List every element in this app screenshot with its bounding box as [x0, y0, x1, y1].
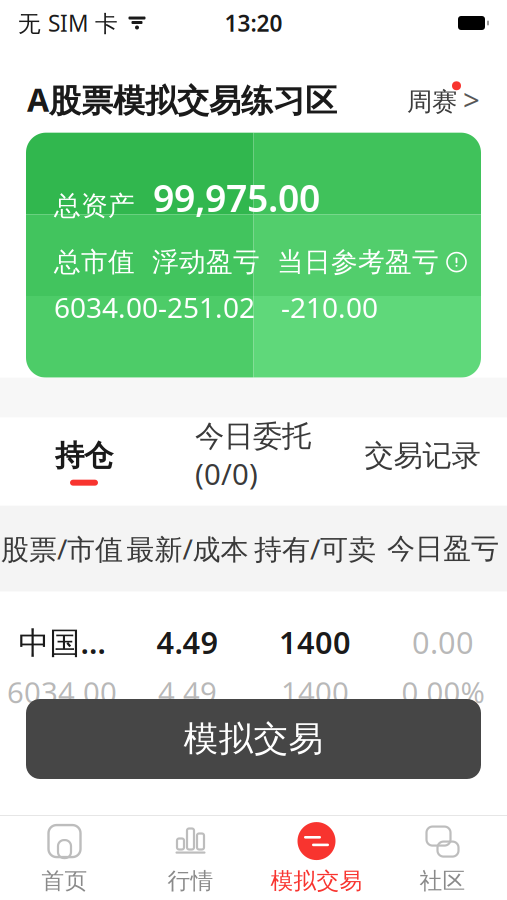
staticText: 当日参考盈亏: [277, 246, 439, 278]
button[interactable]: 行情: [127, 816, 253, 900]
staticText: 模拟交易: [183, 718, 323, 760]
staticText: 周赛: [407, 86, 457, 117]
staticText: 总资产: [54, 189, 135, 222]
button[interactable]: 交易记录: [338, 418, 507, 506]
staticText: 模拟交易: [270, 867, 362, 895]
staticText: 社区: [419, 867, 465, 895]
staticText: -210.00: [281, 288, 378, 326]
staticText: 交易记录: [364, 438, 480, 474]
staticText: 中国…: [18, 622, 105, 662]
button[interactable]: 今日委托(0/0): [168, 418, 338, 506]
staticText: 持有/可卖: [254, 530, 376, 567]
button[interactable]: 首页: [1, 816, 127, 900]
button[interactable]: 周赛: [407, 80, 480, 119]
staticText: 持仓: [55, 438, 113, 474]
staticText: 总市值: [54, 246, 135, 278]
button[interactable]: 持仓: [0, 418, 168, 506]
staticText: 浮动盈亏: [152, 246, 260, 278]
staticText: A股票模拟交易练习区: [27, 78, 337, 121]
staticText: 1400: [281, 672, 349, 711]
staticText: >: [463, 80, 480, 119]
staticText: 今日委托(0/0): [195, 418, 311, 493]
staticText: 首页: [41, 867, 87, 895]
button[interactable]: 模拟交易: [253, 816, 379, 900]
staticText: 股票/市值: [1, 530, 123, 567]
staticText: 行情: [167, 867, 213, 895]
staticText: -251.02: [158, 288, 255, 326]
staticText: 6034.00: [54, 288, 158, 326]
staticText: 99,975.00: [153, 173, 320, 222]
staticText: 1400: [279, 622, 351, 662]
staticText: 4.49: [158, 672, 217, 711]
staticText: 今日盈亏: [387, 531, 499, 566]
staticText: 13:20: [224, 8, 282, 38]
staticText: 无 SIM 卡: [18, 8, 118, 38]
staticText: 6034.00: [7, 672, 117, 711]
button[interactable]: 社区: [379, 816, 505, 900]
button[interactable]: 模拟交易: [26, 699, 481, 779]
staticText: 0.00%: [401, 672, 484, 711]
staticText: 4.49: [156, 622, 218, 662]
staticText: 最新/成本: [126, 530, 248, 567]
staticText: 0.00: [412, 622, 474, 662]
